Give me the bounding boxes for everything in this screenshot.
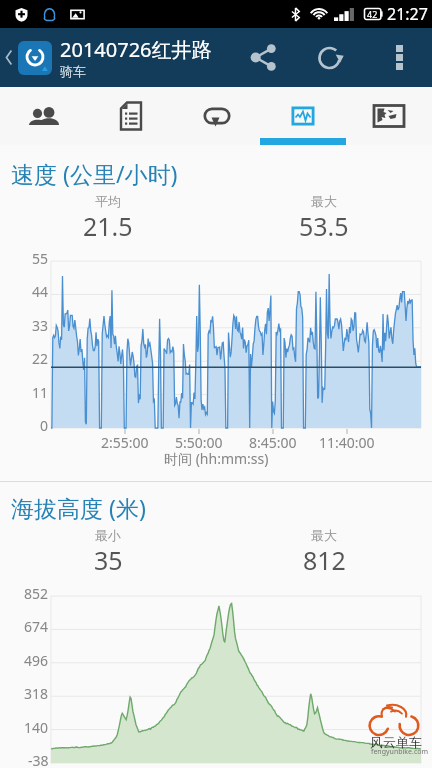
staticText: 35 bbox=[94, 543, 123, 577]
staticText: 55 bbox=[32, 249, 49, 268]
staticText: 20140726红井路 bbox=[60, 36, 212, 63]
staticText: 2:55:00 bbox=[101, 433, 149, 452]
button[interactable]: Friends bbox=[0, 87, 87, 145]
staticText: 33 bbox=[32, 316, 49, 335]
button[interactable]: Share bbox=[230, 28, 296, 87]
staticText: 5:50:00 bbox=[175, 433, 223, 452]
staticText: 812 bbox=[303, 543, 346, 577]
staticText: 最大 bbox=[311, 527, 337, 543]
staticText: 骑车 bbox=[60, 63, 86, 79]
button[interactable]: Charts bbox=[260, 87, 346, 145]
staticText: 21.5 bbox=[83, 209, 133, 243]
staticText: 平均 bbox=[95, 193, 121, 209]
staticText: fengyunbike.com bbox=[371, 747, 429, 757]
staticText: 496 bbox=[24, 651, 49, 670]
button[interactable]: Photos bbox=[346, 87, 432, 145]
button[interactable]: Refresh bbox=[296, 28, 366, 87]
staticText: 140 bbox=[24, 718, 49, 737]
staticText: 53.5 bbox=[299, 209, 349, 243]
staticText: 风云单车 bbox=[370, 734, 422, 750]
staticText: -38 bbox=[28, 751, 49, 768]
staticText: 852 bbox=[24, 584, 49, 603]
staticText: 22 bbox=[32, 349, 49, 368]
staticText: 318 bbox=[24, 684, 49, 703]
staticText: 42 bbox=[367, 8, 378, 20]
staticText: 674 bbox=[24, 617, 49, 636]
staticText: 21:27 bbox=[387, 3, 428, 25]
staticText: 11 bbox=[32, 383, 49, 402]
staticText: 8:45:00 bbox=[249, 433, 297, 452]
button[interactable]: Back bbox=[0, 28, 18, 87]
button[interactable]: More options bbox=[366, 28, 432, 87]
staticText: 最大 bbox=[311, 193, 337, 209]
button[interactable]: Details bbox=[87, 87, 174, 145]
staticText: 海拔高度 (米) bbox=[11, 492, 146, 523]
staticText: 速度 (公里/小时) bbox=[11, 158, 178, 189]
staticText: 最小 bbox=[95, 527, 121, 543]
staticText: 时间 (hh:mm:ss) bbox=[164, 449, 269, 468]
staticText: 44 bbox=[32, 282, 49, 301]
staticText: 0 bbox=[40, 416, 49, 435]
button[interactable]: Laps bbox=[174, 87, 260, 145]
staticText: 11:40:00 bbox=[319, 433, 375, 452]
